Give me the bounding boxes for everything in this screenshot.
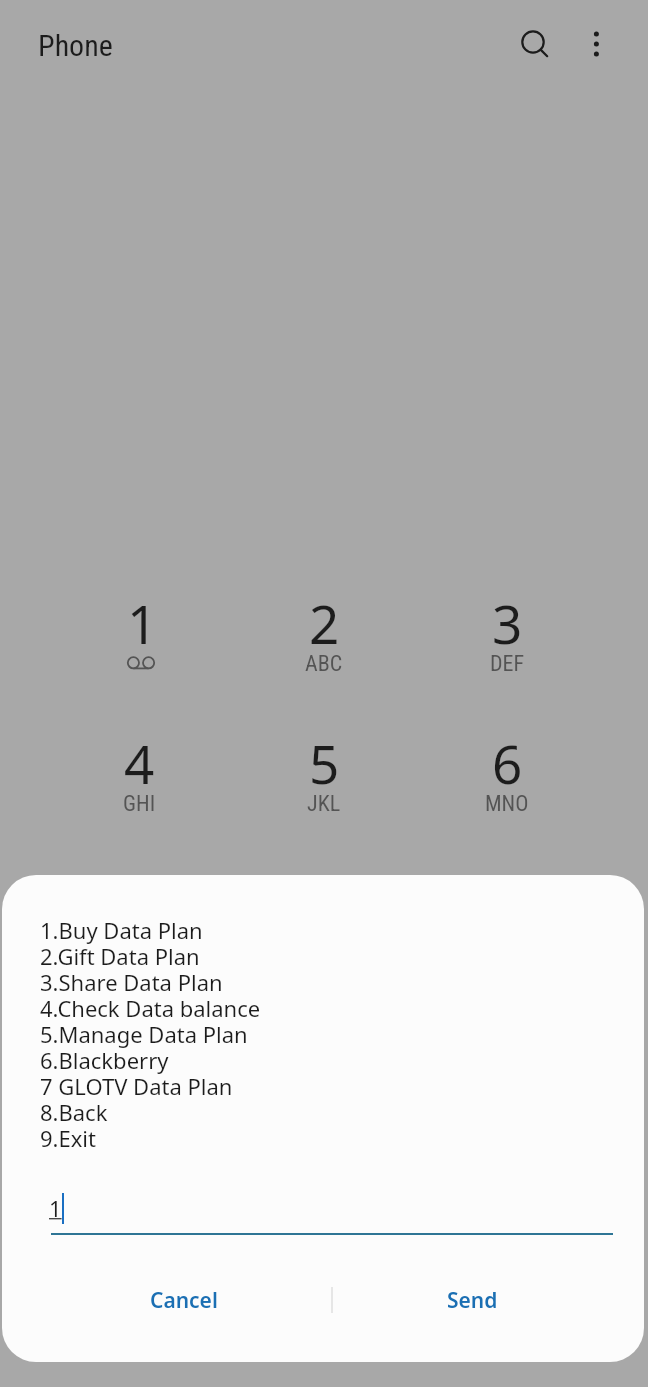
button[interactable]: 3 — [415, 561, 599, 691]
button[interactable]: Cancel — [119, 1274, 249, 1326]
staticText: 6 — [492, 727, 523, 799]
staticText: 1.Buy Data Plan 2.Gift Data Plan 3.Share… — [40, 915, 261, 1153]
button[interactable]: 5 — [232, 701, 416, 831]
staticText: 1 — [49, 1193, 62, 1223]
button[interactable]: Send — [407, 1274, 537, 1326]
staticText: DEF — [490, 651, 525, 677]
staticText: 4 — [124, 727, 155, 799]
button[interactable]: More options — [568, 16, 624, 72]
staticText: 2 — [309, 587, 340, 659]
staticText: Phone — [38, 28, 113, 63]
staticText: 5 — [309, 727, 340, 799]
staticText: Cancel — [150, 1286, 218, 1315]
staticText: GHI — [123, 791, 156, 817]
staticText: 3 — [492, 587, 523, 659]
staticText: MNO — [485, 791, 529, 817]
other: Voicemail — [124, 657, 158, 675]
button[interactable]: 6 — [415, 701, 599, 831]
button[interactable]: 2 — [232, 561, 416, 691]
staticText: Send — [447, 1286, 498, 1315]
staticText: JKL — [307, 791, 341, 817]
button[interactable]: Search — [505, 14, 561, 70]
staticText: ABC — [305, 651, 343, 677]
staticText: 1 — [127, 587, 158, 659]
button[interactable]: 1 — [50, 561, 234, 691]
button[interactable]: 4 — [47, 701, 231, 831]
